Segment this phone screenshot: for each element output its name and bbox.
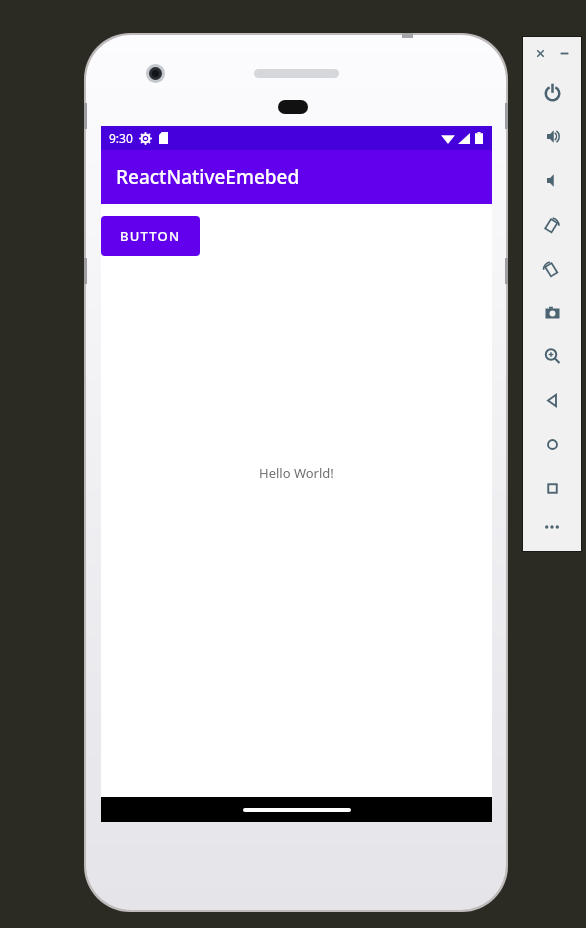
button[interactable]: Home bbox=[523, 422, 581, 466]
button[interactable]: Power bbox=[523, 70, 581, 114]
button[interactable]: BUTTON bbox=[101, 216, 200, 256]
button[interactable]: Overview bbox=[523, 466, 581, 510]
button[interactable]: Back bbox=[523, 378, 581, 422]
button[interactable]: More options bbox=[523, 510, 581, 544]
staticText: Hello World! bbox=[259, 464, 334, 482]
button[interactable]: Minimize bbox=[555, 44, 573, 62]
button[interactable]: Volume up bbox=[523, 114, 581, 158]
button[interactable]: Close bbox=[531, 44, 549, 62]
button[interactable]: Home gesture bar bbox=[243, 808, 351, 812]
staticText: BUTTON bbox=[120, 227, 181, 245]
button[interactable]: Rotate right bbox=[523, 246, 581, 290]
staticText: ReactNativeEmebed bbox=[116, 164, 300, 190]
button[interactable]: Take screenshot bbox=[523, 290, 581, 334]
staticText: 9:30 bbox=[109, 130, 133, 146]
button[interactable]: Volume down bbox=[523, 158, 581, 202]
button[interactable]: Rotate left bbox=[523, 202, 581, 246]
button[interactable]: Zoom bbox=[523, 334, 581, 378]
